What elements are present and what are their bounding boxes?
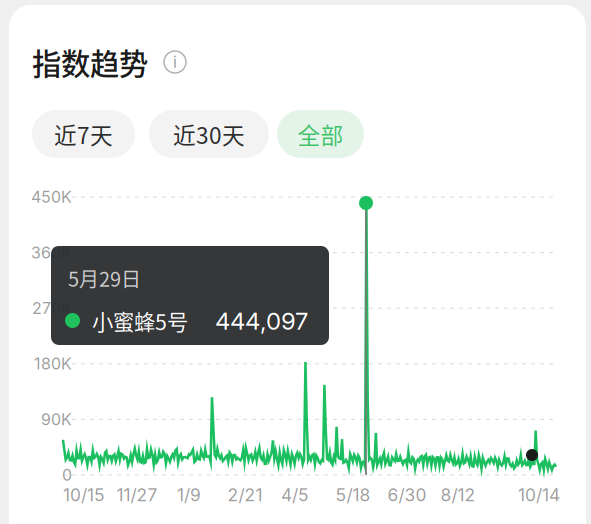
staticText: 270K bbox=[32, 298, 72, 318]
staticText: 0 bbox=[62, 465, 72, 485]
staticText: 全部 bbox=[297, 118, 343, 150]
staticText: 6/30 bbox=[387, 484, 426, 505]
staticText: 360K bbox=[31, 243, 72, 262]
staticText: 近30天 bbox=[173, 118, 245, 150]
staticText: 指数趋势 bbox=[32, 41, 148, 83]
staticText: 小蜜蜂5号 bbox=[92, 306, 188, 336]
button[interactable]: More info bbox=[163, 50, 187, 74]
staticText: 11/27 bbox=[116, 484, 157, 505]
staticText: 90K bbox=[41, 410, 72, 429]
staticText: 2/21 bbox=[227, 484, 262, 505]
staticText: 10/15 bbox=[63, 484, 105, 505]
staticText: 450K bbox=[31, 187, 72, 207]
staticText: 5/18 bbox=[335, 484, 370, 505]
staticText: 8/12 bbox=[440, 484, 475, 505]
staticText: 444,097 bbox=[215, 306, 308, 335]
staticText: 4/5 bbox=[281, 484, 309, 505]
staticText: i bbox=[173, 52, 177, 72]
staticText: 1/9 bbox=[177, 484, 201, 505]
staticText: 近7天 bbox=[54, 118, 113, 150]
staticText: 10/14 bbox=[518, 484, 560, 505]
button[interactable]: 全部 bbox=[277, 110, 364, 158]
button[interactable]: 近7天 bbox=[32, 110, 135, 158]
staticText: 5月29日 bbox=[68, 263, 141, 292]
staticText: 180K bbox=[34, 354, 72, 373]
button[interactable]: 近30天 bbox=[149, 110, 269, 158]
